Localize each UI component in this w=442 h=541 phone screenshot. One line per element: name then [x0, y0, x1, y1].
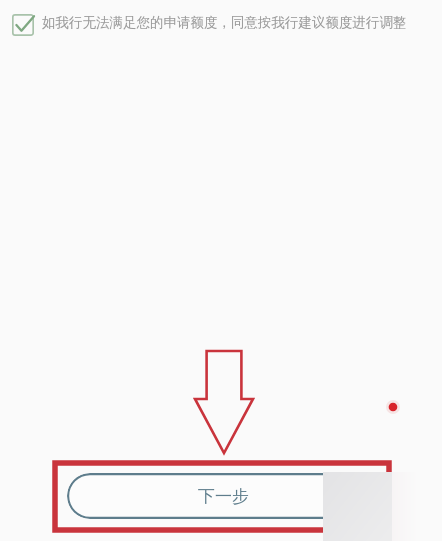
button[interactable]: 同意条款复选框，已选中	[12, 14, 436, 36]
staticText: 如我行无法满足您的申请额度，同意按我行建议额度进行调整	[42, 14, 407, 31]
button[interactable]: 下一步	[67, 473, 379, 519]
staticText: 下一步	[198, 486, 249, 507]
other: 同意条款复选框，已选中	[12, 14, 34, 36]
